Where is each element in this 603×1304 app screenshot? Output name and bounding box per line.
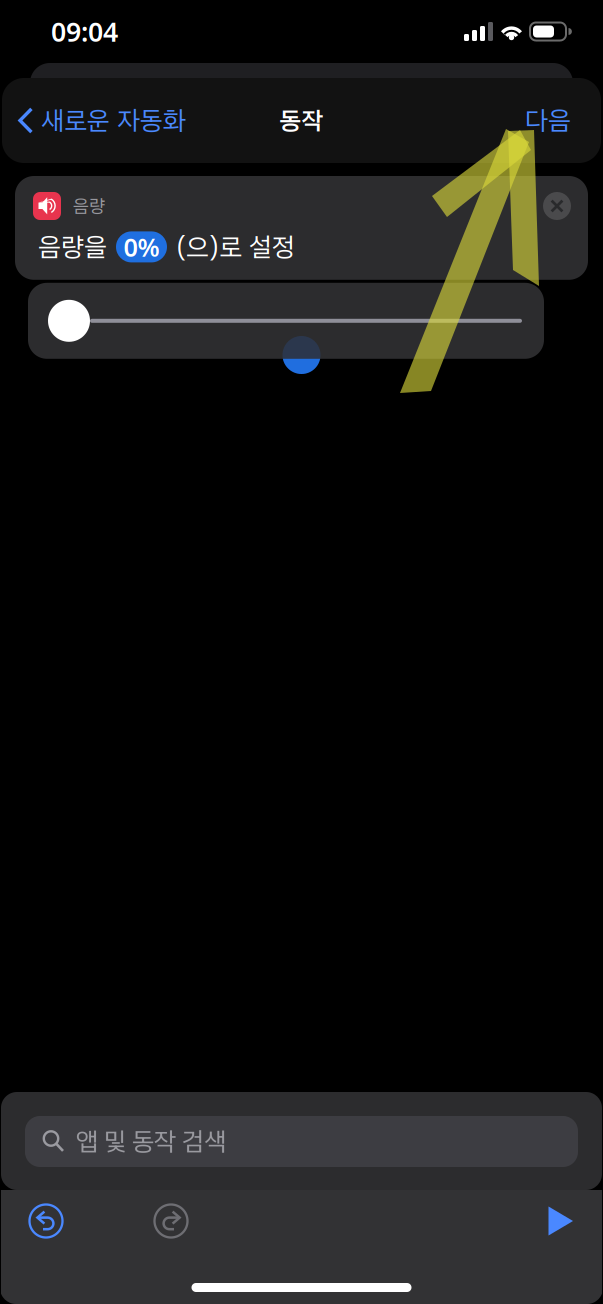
button[interactable]: 다음 — [525, 93, 601, 148]
staticText: (으)로 설정 — [176, 231, 295, 263]
button[interactable]: Remove action — [543, 192, 571, 220]
staticText: 새로운 자동화 — [41, 105, 186, 136]
staticText: 09:04 — [51, 14, 118, 49]
button[interactable]: 새로운 자동화 — [2, 93, 186, 148]
staticText: 음량을 — [38, 231, 107, 263]
button[interactable]: Redo — [151, 1201, 191, 1241]
staticText: 음량 — [73, 195, 105, 217]
button[interactable]: 앱 및 동작 검색 — [25, 1116, 578, 1167]
button[interactable]: Run shortcut — [547, 1206, 574, 1236]
button[interactable]: Undo — [26, 1201, 66, 1241]
staticText: 다음 — [525, 105, 571, 136]
staticText: 앱 및 동작 검색 — [76, 1126, 226, 1157]
staticText: 0% — [123, 230, 159, 264]
staticText: 동작 — [279, 105, 323, 136]
